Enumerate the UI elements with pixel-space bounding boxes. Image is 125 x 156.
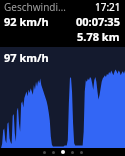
button[interactable]: 92 km/h: [0, 13, 125, 44]
staticText: Geschwindi…: [4, 0, 66, 13]
staticText: 92 km/h: [4, 14, 49, 29]
staticText: 5.78 km: [77, 29, 120, 44]
staticText: 17:21: [95, 0, 121, 13]
button[interactable]: Geschwindi…: [0, 0, 125, 13]
staticText: 00:07:35: [76, 14, 120, 29]
staticText: 97 km/h: [4, 50, 49, 65]
button[interactable]: Speed chart: [0, 47, 125, 148]
